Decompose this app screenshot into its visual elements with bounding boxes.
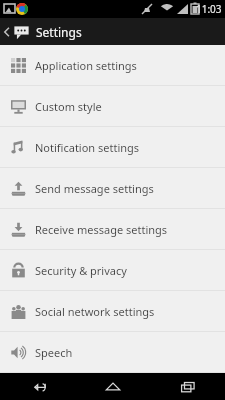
button[interactable]: Back <box>0 373 75 400</box>
staticText: Send message settings <box>35 181 154 196</box>
button[interactable]: Custom style <box>0 86 225 126</box>
staticText: Receive message settings <box>35 222 168 237</box>
staticText: Security & privacy <box>35 263 127 278</box>
staticText: Social network settings <box>35 304 155 319</box>
button[interactable]: Speech <box>0 332 225 372</box>
button[interactable]: Social network settings <box>0 291 225 331</box>
button[interactable]: Navigate up <box>0 18 225 45</box>
button[interactable]: Notification settings <box>0 127 225 167</box>
button[interactable]: Recent apps <box>150 373 225 400</box>
staticText: Notification settings <box>35 140 140 155</box>
button[interactable]: Receive message settings <box>0 209 225 249</box>
staticText: 11:03 <box>196 2 222 16</box>
staticText: Application settings <box>35 58 137 73</box>
button[interactable]: Security & privacy <box>0 250 225 290</box>
button[interactable]: Application settings <box>0 45 225 85</box>
staticText: Speech <box>35 345 73 360</box>
staticText: Custom style <box>35 99 102 114</box>
button[interactable]: Home <box>75 373 150 400</box>
button[interactable]: Send message settings <box>0 168 225 208</box>
staticText: Settings <box>36 24 82 40</box>
